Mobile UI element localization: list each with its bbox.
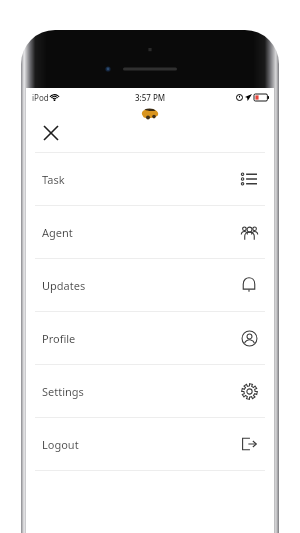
button[interactable]: Close (34, 116, 68, 150)
staticText: Updates (42, 278, 86, 293)
staticText: Settings (42, 384, 84, 399)
button[interactable]: Settings (26, 365, 274, 417)
staticText: iPod (32, 92, 49, 103)
staticText: Agent (42, 225, 73, 240)
staticText: 3:57 PM (135, 92, 166, 103)
staticText: Profile (42, 331, 76, 346)
button[interactable]: Logout (26, 418, 274, 470)
button[interactable]: Updates (26, 259, 274, 311)
staticText: Task (42, 172, 65, 187)
button[interactable]: Agent (26, 206, 274, 258)
button[interactable]: Task (26, 153, 274, 205)
staticText: Logout (42, 437, 79, 452)
button[interactable]: Profile (26, 312, 274, 364)
